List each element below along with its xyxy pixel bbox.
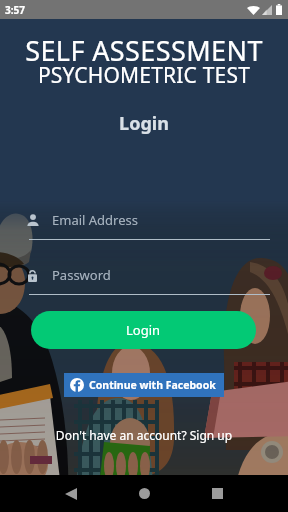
- staticText: Password: [52, 266, 111, 284]
- button[interactable]: Login: [31, 311, 256, 349]
- staticText: PSYCHOMETRIC TEST: [0, 61, 288, 90]
- button[interactable]: Continue with Facebook: [64, 373, 224, 397]
- button[interactable]: Recent apps: [195, 475, 239, 512]
- staticText: Login: [126, 321, 161, 339]
- button[interactable]: Home: [122, 475, 166, 512]
- button[interactable]: Don't have an account? Sign up: [0, 427, 288, 443]
- staticText: Continue with Facebook: [89, 378, 216, 392]
- staticText: Email Address: [52, 211, 138, 229]
- staticText: 3:57: [5, 3, 25, 17]
- staticText: Login: [0, 111, 288, 136]
- button[interactable]: Back: [49, 475, 93, 512]
- staticText: SELF ASSESSMENT: [0, 32, 288, 69]
